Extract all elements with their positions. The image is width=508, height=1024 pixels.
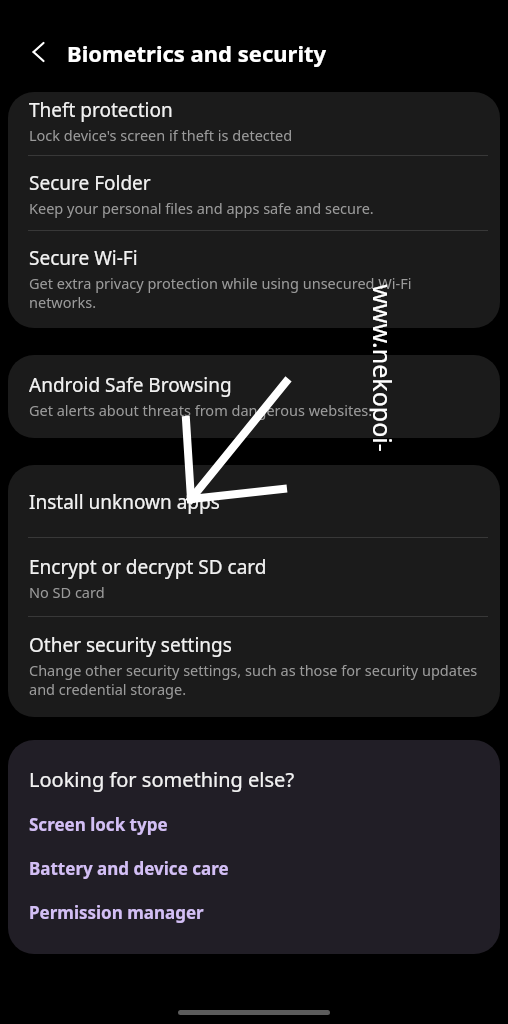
button[interactable]: Secure Folder <box>8 156 500 230</box>
staticText: Keep your personal files and apps safe a… <box>29 198 374 218</box>
staticText: Secure Folder <box>29 170 151 196</box>
staticText: Permission manager <box>29 901 204 924</box>
staticText: Biometrics and security <box>67 38 327 68</box>
staticText: Looking for something else? <box>29 766 295 793</box>
button[interactable]: Battery and device care <box>8 855 500 882</box>
staticText: Android Safe Browsing <box>29 372 232 398</box>
button[interactable]: Encrypt or decrypt SD card <box>8 538 500 616</box>
staticText: No SD card <box>29 582 105 602</box>
button[interactable]: Screen lock type <box>8 811 500 838</box>
button[interactable]: Permission manager <box>8 899 500 926</box>
staticText: Encrypt or decrypt SD card <box>29 554 267 580</box>
staticText: www.nekopoi-apk.site <box>369 255 399 480</box>
staticText: Get alerts about threats from dangerous … <box>29 400 373 420</box>
staticText: Change other security settings, such as … <box>29 660 482 699</box>
staticText: Lock device's screen if theft is detecte… <box>29 125 293 145</box>
button[interactable]: Other security settings <box>8 617 500 717</box>
staticText: Get extra privacy protection while using… <box>29 273 482 312</box>
staticText: Other security settings <box>29 632 232 658</box>
button[interactable]: Theft protection <box>8 92 500 155</box>
staticText: Screen lock type <box>29 813 168 836</box>
button[interactable]: Android Safe Browsing <box>8 355 500 438</box>
staticText: Secure Wi-Fi <box>29 245 138 271</box>
staticText: Theft protection <box>29 97 173 123</box>
button[interactable]: Install unknown apps <box>8 465 500 537</box>
staticText: Battery and device care <box>29 857 229 880</box>
staticText: Install unknown apps <box>29 489 220 515</box>
button[interactable]: Secure Wi-Fi <box>8 231 500 328</box>
button[interactable]: Back <box>20 34 56 70</box>
